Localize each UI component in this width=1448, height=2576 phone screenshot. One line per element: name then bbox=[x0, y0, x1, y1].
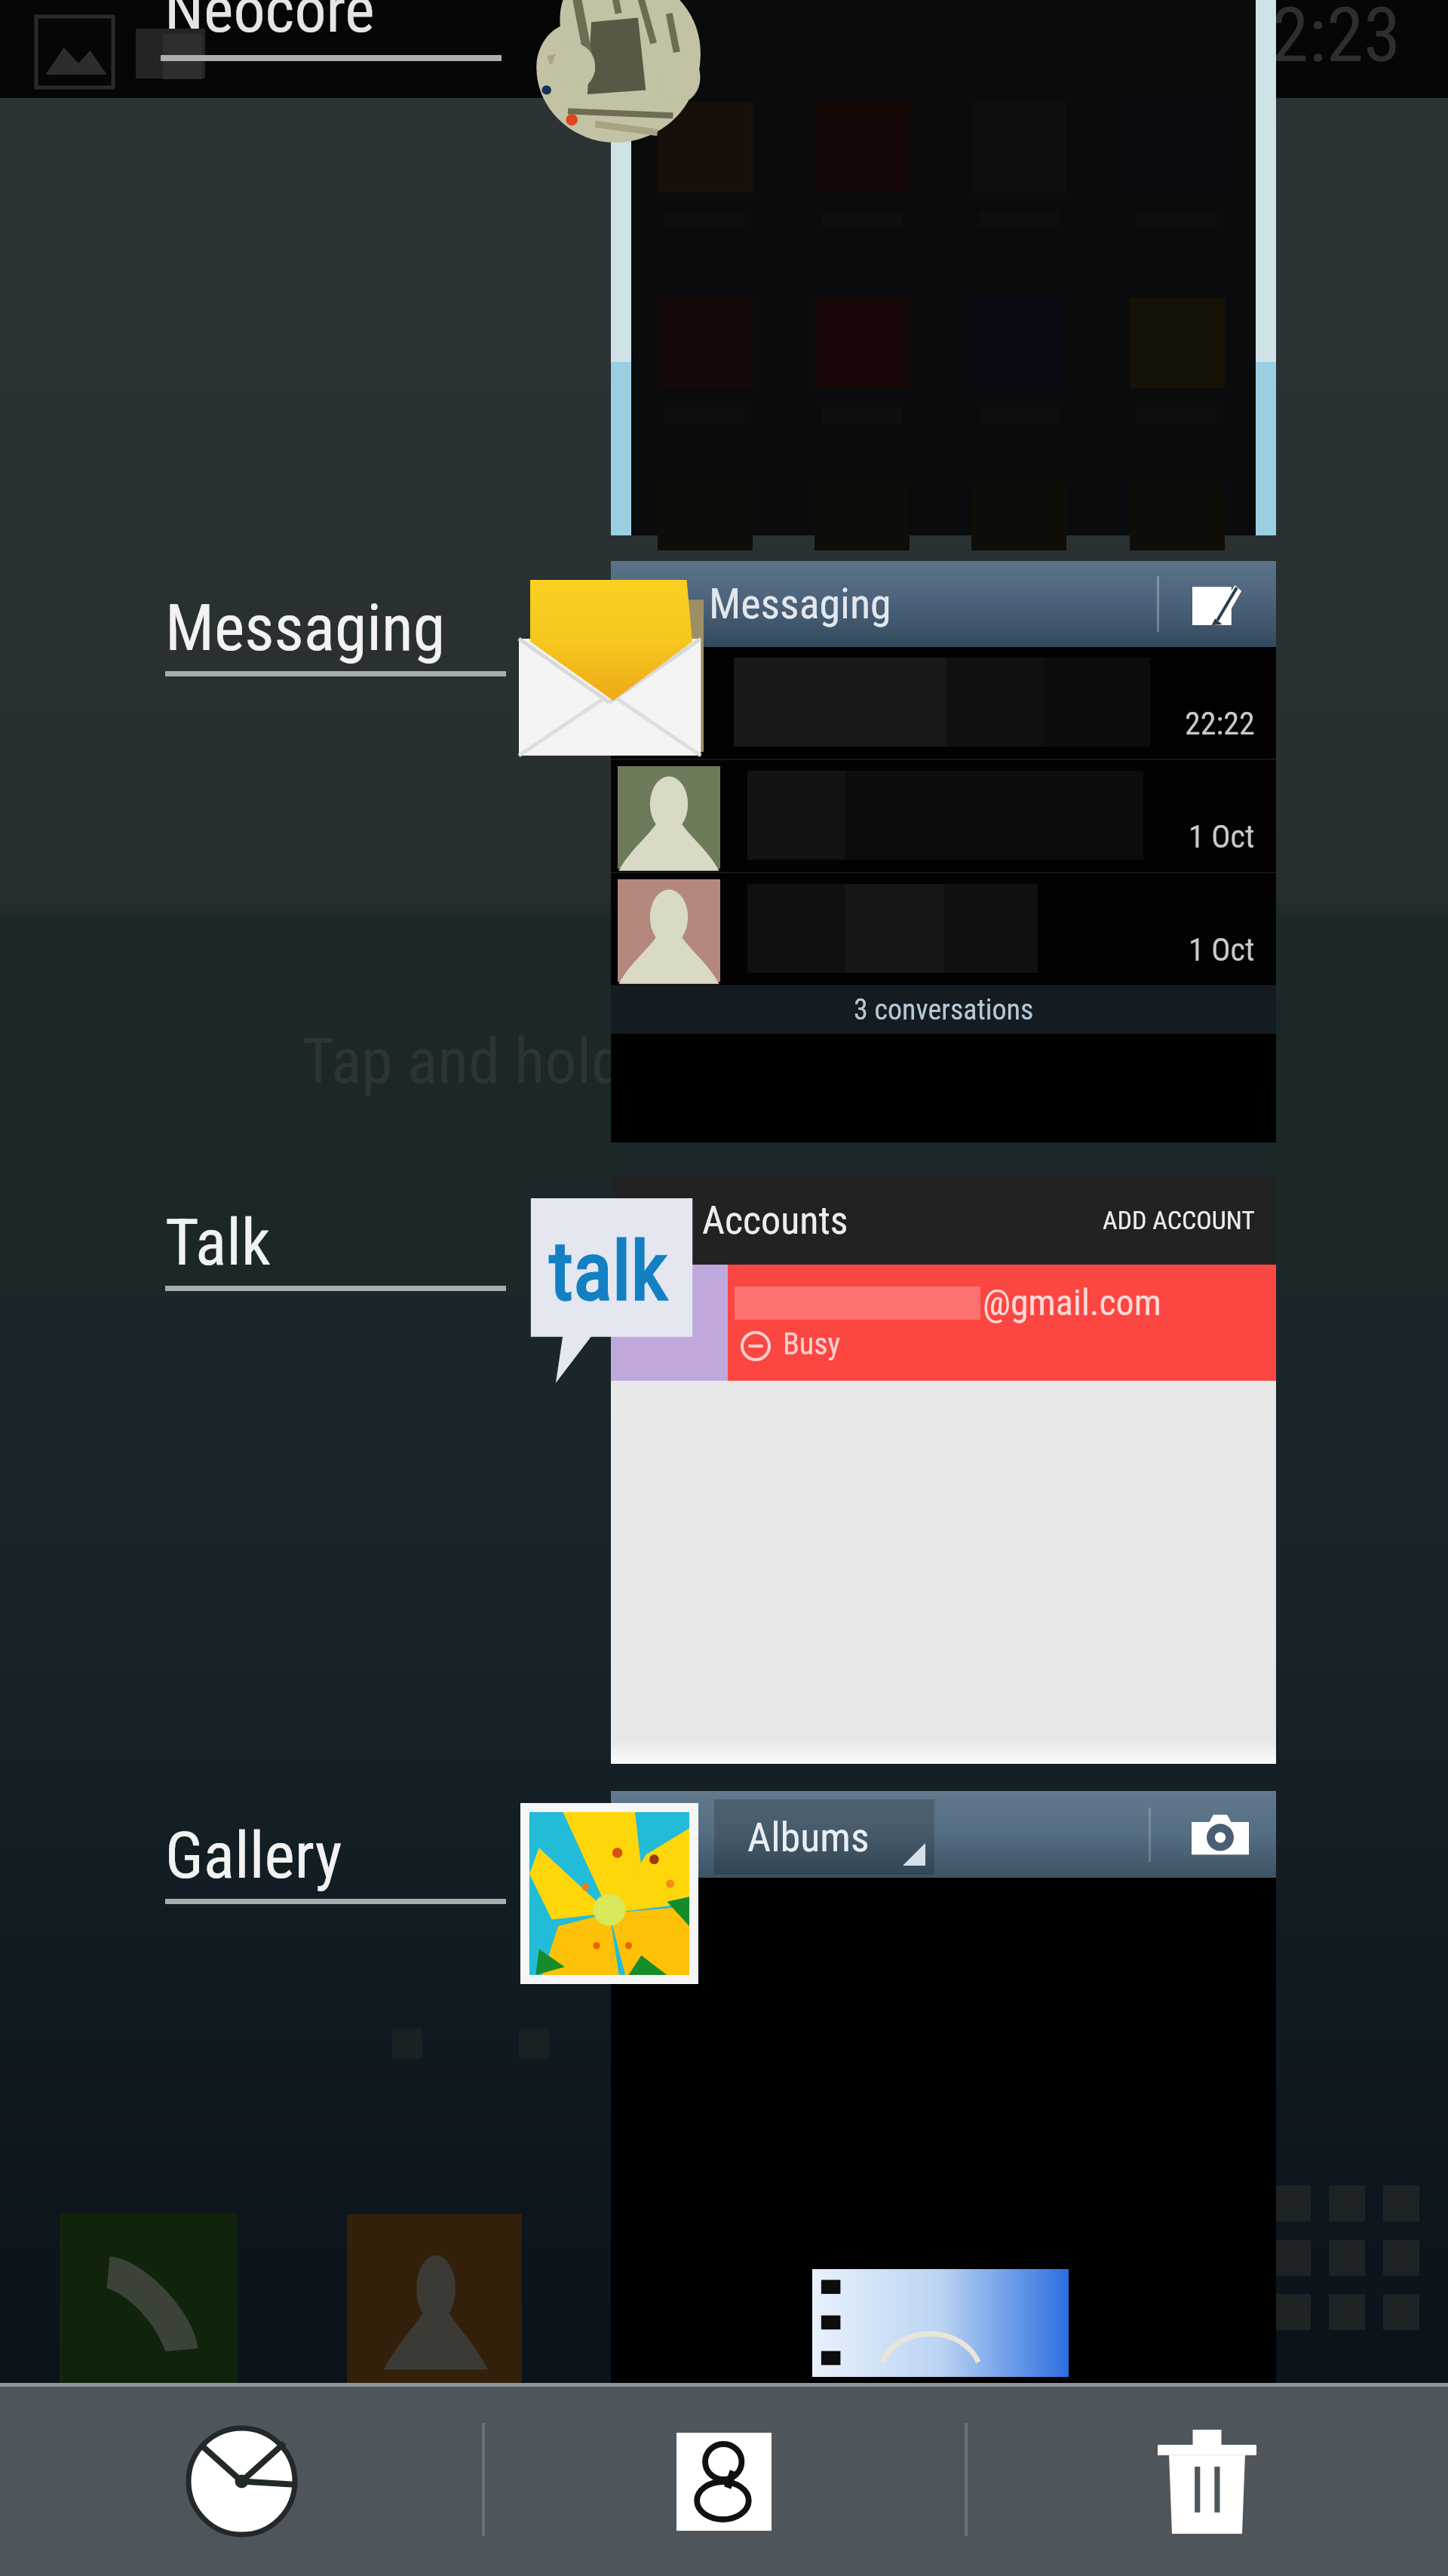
button[interactable]: Camera bbox=[1192, 1812, 1249, 1857]
staticText: Albums bbox=[747, 1814, 870, 1861]
button[interactable]: Google search bbox=[483, 2387, 965, 2576]
staticText: Gallery bbox=[165, 1817, 342, 1894]
button[interactable] bbox=[611, 0, 1276, 535]
staticText: Talk bbox=[165, 1204, 271, 1280]
staticText: 1 Oct bbox=[1189, 931, 1255, 968]
staticText: talk bbox=[549, 1224, 668, 1320]
staticText: 3 conversations bbox=[854, 993, 1034, 1027]
button[interactable]: Accounts bbox=[611, 1176, 1276, 1764]
staticText: Accounts bbox=[702, 1198, 848, 1244]
staticText: 2:23 bbox=[1272, 0, 1401, 79]
staticText: 22:22 bbox=[1185, 705, 1255, 742]
button[interactable]: Albums bbox=[714, 1799, 934, 1875]
staticText: @gmail.com bbox=[983, 1281, 1161, 1323]
button[interactable]: Task manager bbox=[0, 2387, 483, 2576]
staticText: Tap and hold an empty bbox=[302, 1024, 867, 1098]
button[interactable]: Messaging bbox=[165, 590, 506, 666]
button[interactable]: ADD ACCOUNT bbox=[1103, 1205, 1256, 1235]
button[interactable]: Messaging bbox=[611, 561, 1276, 1142]
staticText: Messaging bbox=[709, 579, 891, 629]
staticText: Messaging bbox=[165, 590, 446, 666]
button[interactable]: Clear all bbox=[965, 2387, 1448, 2576]
button[interactable]: Talk bbox=[165, 1204, 506, 1280]
staticText: Neocore bbox=[164, 0, 375, 47]
staticText: Busy bbox=[783, 1326, 841, 1362]
button[interactable]: Gallery bbox=[165, 1817, 506, 1894]
button[interactable]: Albums bbox=[611, 1791, 1276, 2387]
staticText: 1 Oct bbox=[1189, 818, 1255, 855]
button[interactable]: New message bbox=[1192, 584, 1241, 625]
